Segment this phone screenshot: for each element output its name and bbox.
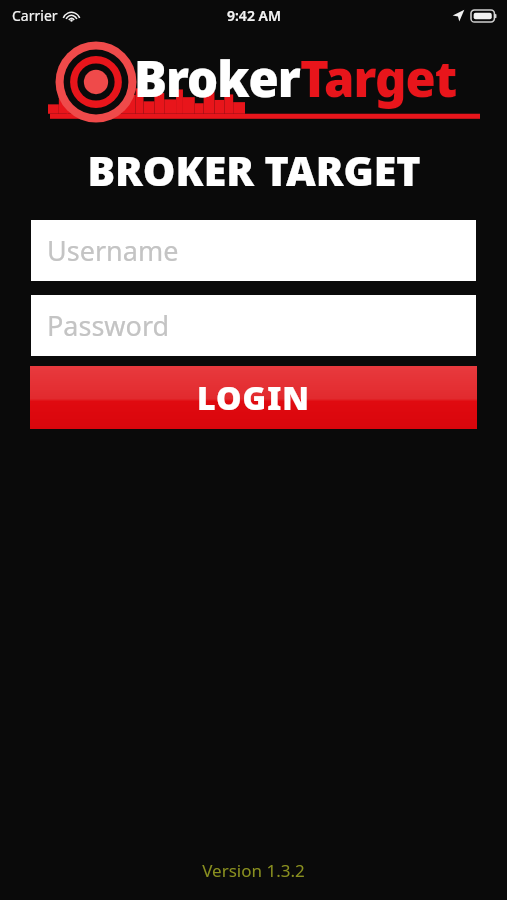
staticText: BROKER TARGET [87,142,421,198]
staticText: Target [300,45,457,112]
button[interactable]: Username [31,220,476,281]
button[interactable]: Password [31,295,476,356]
staticText: Username [47,232,179,269]
staticText: Carrier [12,6,58,25]
staticText: Password [47,307,170,344]
staticText: LOGIN [197,376,310,420]
staticText: 9:42 AM [227,6,281,25]
button[interactable]: LOGIN [30,366,477,429]
staticText: Broker [134,45,300,112]
staticText: Version 1.3.2 [202,859,305,882]
